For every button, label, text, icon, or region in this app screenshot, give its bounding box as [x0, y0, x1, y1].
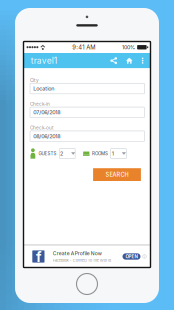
- staticText: Facebook - Connect To The World: [53, 258, 111, 263]
- button[interactable]: f: [23, 245, 150, 267]
- staticText: 08/06/2018: [33, 133, 60, 139]
- button[interactable]: 08/06/2018: [30, 131, 144, 141]
- staticText: SEARCH: [105, 171, 128, 178]
- button[interactable]: Home: [123, 53, 135, 68]
- staticText: 2: [60, 150, 63, 157]
- staticText: GUESTS: [38, 151, 56, 156]
- button[interactable]: SEARCH: [93, 168, 141, 181]
- staticText: OPEN: [125, 254, 137, 259]
- staticText: Create A Profile Now: [53, 250, 102, 256]
- staticText: i: [144, 255, 145, 258]
- button[interactable]: Share: [108, 53, 120, 68]
- staticText: Check-in: [30, 101, 50, 107]
- button[interactable]: 07/06/2018: [30, 107, 144, 118]
- staticText: 07/06/2018: [33, 109, 60, 116]
- button[interactable]: More options: [140, 53, 146, 68]
- staticText: travel1: [31, 55, 57, 66]
- button[interactable]: Location: [30, 83, 144, 94]
- button[interactable]: 1: [111, 149, 126, 159]
- staticText: ROOMS: [92, 151, 108, 156]
- staticText: 100%: [122, 44, 135, 50]
- staticText: 9:41 AM: [72, 44, 95, 51]
- staticText: f: [36, 248, 42, 265]
- staticText: Location: [33, 85, 54, 92]
- button[interactable]: 2: [59, 149, 75, 159]
- staticText: City: [30, 77, 39, 83]
- staticText: 1: [112, 150, 114, 157]
- staticText: Check-out: [30, 125, 54, 131]
